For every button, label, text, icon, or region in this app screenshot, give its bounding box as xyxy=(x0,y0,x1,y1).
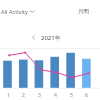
button[interactable]: Previous year xyxy=(28,32,39,43)
button[interactable]: All Activity xyxy=(0,0,39,23)
staticText: All Activity xyxy=(1,8,28,16)
staticText: 4 xyxy=(54,92,57,99)
staticText: 月間 xyxy=(78,8,90,15)
staticText: 2 xyxy=(22,92,25,99)
staticText: 6 xyxy=(85,92,88,99)
staticText: 3 xyxy=(38,92,41,99)
staticText: 1 xyxy=(7,92,10,99)
staticText: 2021年 xyxy=(41,34,61,42)
button[interactable]: 月間 xyxy=(72,0,100,23)
staticText: 5 xyxy=(70,92,73,99)
